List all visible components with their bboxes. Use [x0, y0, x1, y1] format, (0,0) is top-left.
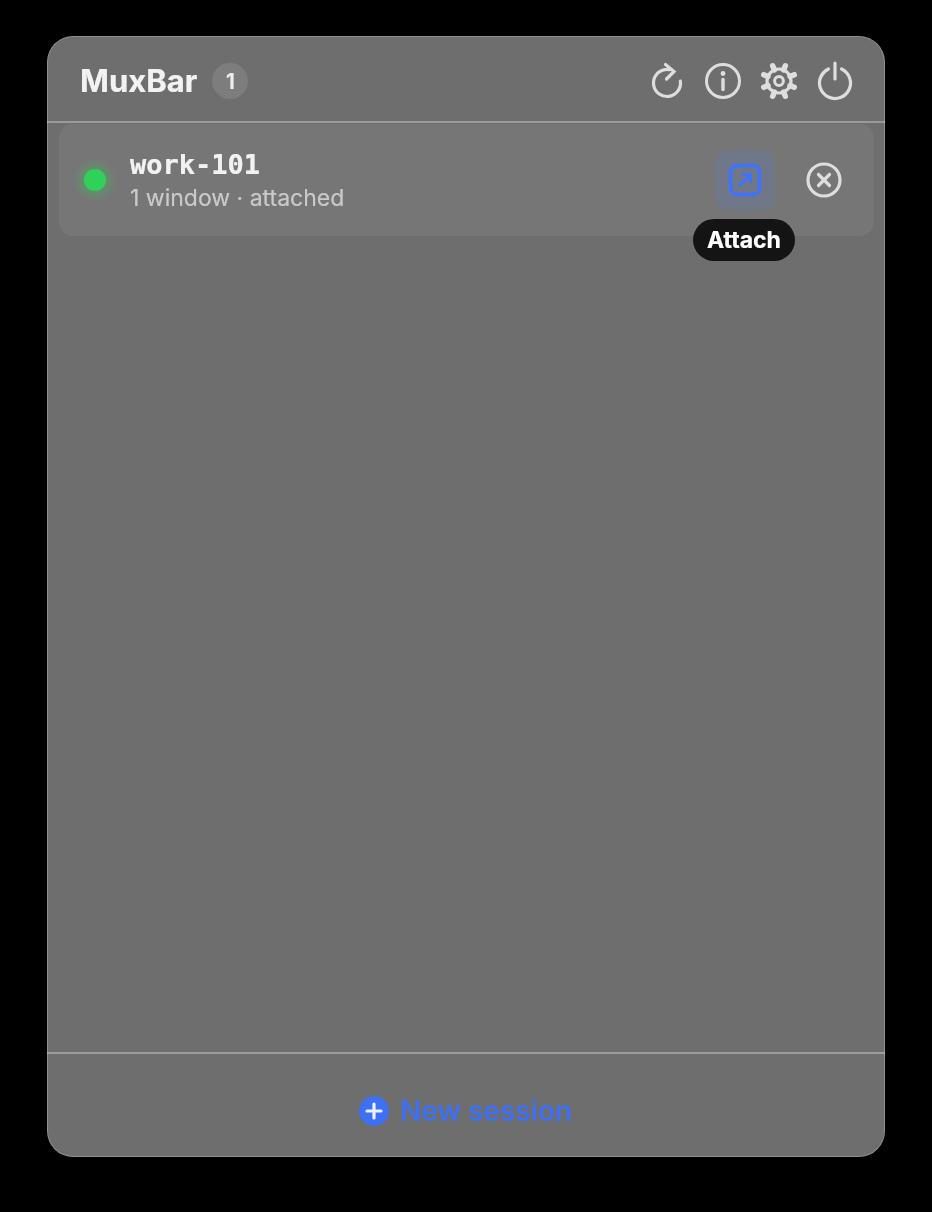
button[interactable]	[813, 59, 857, 103]
button[interactable]: work-101	[59, 124, 874, 236]
staticText: 1 window · attached	[130, 184, 345, 212]
staticText: Attach	[707, 226, 781, 254]
staticText: 1	[226, 69, 235, 94]
button[interactable]	[715, 150, 775, 210]
button[interactable]	[701, 59, 745, 103]
staticText: work-101	[130, 149, 261, 180]
button[interactable]: New session	[47, 1089, 885, 1133]
button[interactable]	[645, 59, 689, 103]
button[interactable]	[802, 158, 846, 202]
staticText: New session	[400, 1094, 573, 1128]
staticText: MuxBar	[80, 62, 198, 100]
button[interactable]	[757, 59, 801, 103]
